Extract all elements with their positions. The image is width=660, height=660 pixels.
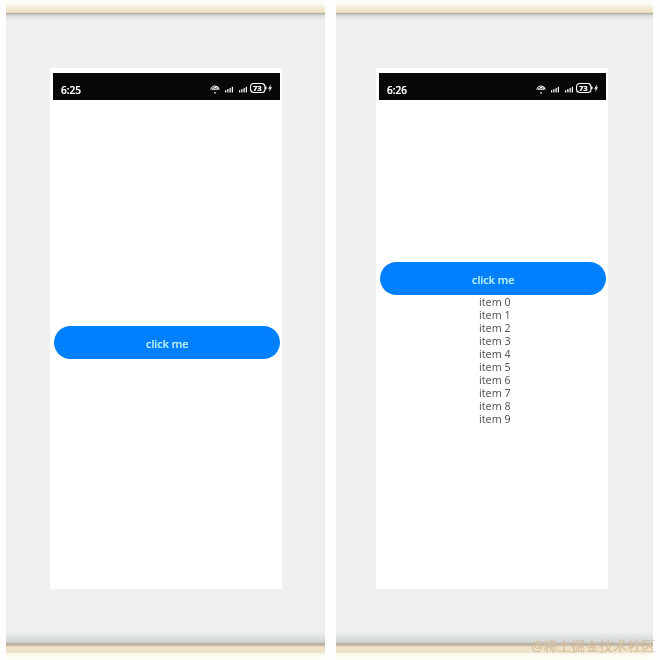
staticText: item 3 — [479, 334, 511, 347]
staticText: 73 — [253, 83, 262, 93]
staticText: item 6 — [479, 373, 511, 386]
staticText: item 9 — [479, 412, 511, 425]
staticText: click me — [472, 272, 515, 287]
button[interactable]: click me — [54, 326, 280, 359]
staticText: item 1 — [479, 308, 511, 321]
staticText: 73 — [579, 83, 588, 93]
staticText: click me — [146, 336, 189, 351]
staticText: @稀土掘金技术社区 — [531, 636, 656, 655]
staticText: item 2 — [479, 321, 511, 334]
staticText: 6:26 — [387, 83, 407, 97]
staticText: 6:25 — [61, 83, 81, 97]
staticText: item 0 — [479, 295, 511, 308]
staticText: item 5 — [479, 360, 511, 373]
staticText: item 8 — [479, 399, 511, 412]
staticText: item 4 — [479, 347, 511, 360]
staticText: item 7 — [479, 386, 511, 399]
button[interactable]: click me — [380, 262, 606, 295]
